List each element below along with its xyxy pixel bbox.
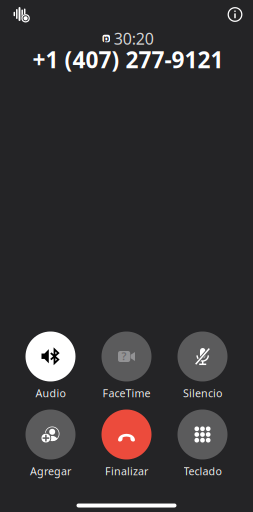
staticText: Agregar	[30, 464, 71, 478]
button[interactable]: Teclado	[164, 410, 240, 475]
staticText: Teclado	[183, 464, 221, 478]
staticText: 30:20	[114, 28, 154, 49]
button[interactable]: ?	[88, 332, 164, 397]
staticText: +1 (407) 277-9121	[32, 44, 223, 74]
staticText: Audio	[35, 386, 65, 400]
staticText: FaceTime	[102, 386, 150, 400]
button[interactable]: Audio	[12, 332, 88, 397]
button[interactable]: Silencio	[164, 332, 240, 397]
staticText: Finalizar	[105, 464, 148, 478]
button[interactable]: Live audio	[13, 3, 28, 25]
staticText: ?	[122, 349, 127, 363]
button[interactable]: Agregar	[12, 410, 88, 475]
staticText: Silencio	[183, 386, 222, 400]
button[interactable]: Finalizar	[88, 410, 164, 475]
button[interactable]: Call info	[227, 3, 242, 25]
staticText: p	[103, 32, 109, 44]
